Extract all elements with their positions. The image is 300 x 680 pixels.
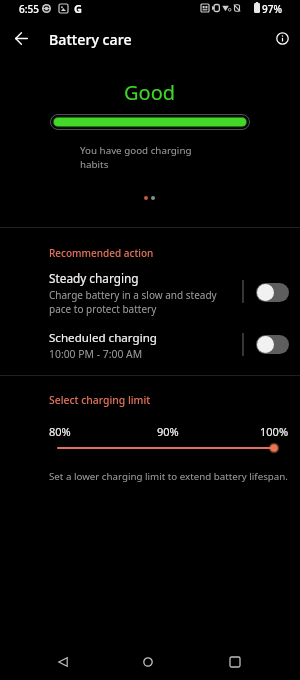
staticText: 10:00 PM - 7:00 AM (49, 347, 143, 361)
staticText: G (74, 1, 82, 16)
staticText: 90% (157, 424, 179, 439)
staticText: 6:55 (19, 2, 39, 16)
staticText: You have good charging habits (80, 144, 192, 170)
staticText: Set a lower charging limit to extend bat… (49, 470, 288, 483)
button[interactable]: Steady charging (0, 269, 300, 317)
button[interactable]: Back (45, 646, 81, 678)
staticText: Good (124, 79, 176, 106)
staticText: Recommended action (49, 246, 154, 260)
button[interactable]: Scheduled charging (0, 329, 300, 363)
button[interactable]: Charging limit slider (50, 440, 286, 456)
staticText: 97% (262, 2, 282, 16)
staticText: 100% (260, 424, 289, 439)
staticText: Steady charging (49, 270, 139, 286)
staticText: Select charging limit (49, 393, 151, 407)
staticText: Battery care (49, 30, 132, 49)
staticText: 80% (49, 424, 71, 439)
button[interactable]: Information (265, 21, 299, 55)
staticText: Charge battery in a slow and steady pace… (49, 288, 217, 316)
button[interactable]: Back (4, 21, 38, 55)
button[interactable]: Recent apps (217, 646, 253, 678)
button[interactable]: Home (130, 646, 166, 678)
staticText: Scheduled charging (49, 330, 157, 346)
